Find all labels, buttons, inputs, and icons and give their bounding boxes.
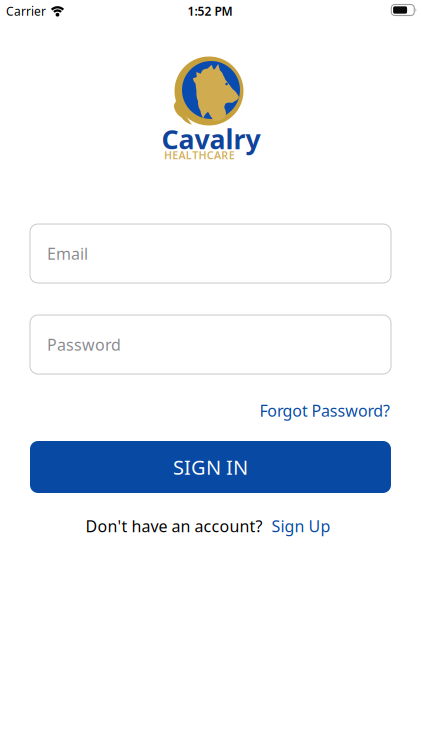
button[interactable]: Password <box>30 315 391 374</box>
staticText: HEALTHCARE <box>164 148 235 162</box>
staticText: Cavalry <box>161 121 260 157</box>
staticText: Password <box>47 334 121 355</box>
button[interactable]: Sign Up <box>271 515 330 537</box>
staticText: Carrier <box>6 3 46 19</box>
staticText: 1:52 PM <box>187 3 232 19</box>
button[interactable]: SIGN IN <box>30 441 391 493</box>
staticText: SIGN IN <box>173 454 248 480</box>
staticText: Sign Up <box>271 515 330 537</box>
button[interactable]: Email <box>30 224 391 283</box>
staticText: Forgot Password? <box>259 400 390 421</box>
button[interactable]: Forgot Password? <box>259 400 390 421</box>
staticText: Don't have an account? <box>85 515 262 537</box>
staticText: Email <box>47 243 88 264</box>
